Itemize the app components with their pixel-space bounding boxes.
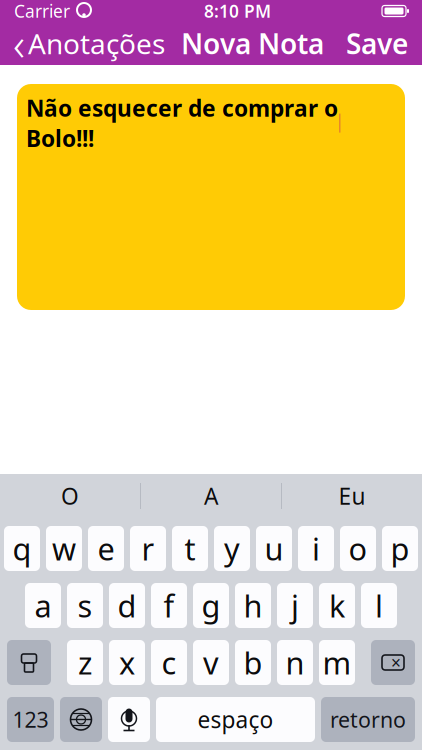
button[interactable]: A: [141, 474, 281, 518]
staticText: ‹: [13, 13, 25, 74]
button[interactable]: n: [277, 640, 313, 685]
button[interactable]: c: [151, 640, 187, 685]
button[interactable]: j: [277, 583, 313, 628]
button[interactable]: v: [193, 640, 229, 685]
button[interactable]: l: [361, 583, 397, 628]
button[interactable]: f: [151, 583, 187, 628]
staticText: Eu: [338, 481, 365, 511]
button[interactable]: b: [235, 640, 271, 685]
staticText: Anotações: [28, 25, 165, 62]
button[interactable]: h: [235, 583, 271, 628]
staticText: retorno: [330, 705, 406, 734]
button[interactable]: z: [67, 640, 103, 685]
button[interactable]: u: [256, 526, 292, 571]
staticText: u: [264, 528, 283, 569]
button[interactable]: Next keyboard: [60, 697, 102, 742]
staticText: d: [117, 585, 136, 626]
staticText: k: [329, 585, 345, 626]
button[interactable]: p: [382, 526, 418, 571]
button[interactable]: x: [109, 640, 145, 685]
staticText: e: [97, 528, 114, 569]
button[interactable]: t: [172, 526, 208, 571]
staticText: l: [375, 585, 383, 626]
staticText: ×: [391, 651, 401, 674]
button[interactable]: q: [4, 526, 40, 571]
button[interactable]: g: [193, 583, 229, 628]
staticText: Não esquecer de comprar o Bolo!!!: [26, 93, 338, 153]
staticText: x: [119, 642, 135, 683]
staticText: q: [12, 528, 31, 569]
button[interactable]: o: [340, 526, 376, 571]
staticText: c: [161, 642, 176, 683]
button[interactable]: y: [214, 526, 250, 571]
staticText: Nova Nota: [181, 25, 324, 62]
button[interactable]: Shift: [7, 640, 51, 685]
button[interactable]: m: [319, 640, 355, 685]
staticText: a: [34, 585, 51, 626]
staticText: 123: [12, 705, 48, 734]
staticText: A: [204, 481, 218, 511]
button[interactable]: w: [46, 526, 82, 571]
staticText: 8:10 PM: [204, 0, 271, 22]
button[interactable]: Save: [332, 22, 422, 64]
staticText: b: [243, 642, 262, 683]
staticText: y: [224, 528, 240, 569]
staticText: espaço: [197, 704, 273, 734]
button[interactable]: ‹: [0, 22, 173, 64]
staticText: t: [184, 528, 195, 569]
staticText: O: [61, 481, 79, 511]
staticText: n: [285, 642, 304, 683]
button[interactable]: i: [298, 526, 334, 571]
staticText: s: [77, 585, 92, 626]
staticText: g: [201, 585, 220, 626]
staticText: h: [243, 585, 262, 626]
button[interactable]: retorno: [321, 697, 415, 742]
staticText: Carrier: [14, 0, 70, 22]
staticText: f: [163, 585, 174, 626]
staticText: i: [312, 528, 320, 569]
button[interactable]: 123: [7, 697, 54, 742]
staticText: r: [141, 528, 154, 569]
button[interactable]: e: [88, 526, 124, 571]
staticText: Save: [346, 25, 408, 62]
button[interactable]: k: [319, 583, 355, 628]
button[interactable]: Dictate: [108, 697, 150, 742]
button[interactable]: d: [109, 583, 145, 628]
button[interactable]: espaço: [156, 697, 315, 742]
staticText: w: [52, 528, 76, 569]
staticText: j: [291, 585, 299, 626]
staticText: z: [78, 642, 92, 683]
staticText: v: [203, 642, 219, 683]
button[interactable]: Delete: [371, 640, 415, 685]
button[interactable]: a: [25, 583, 61, 628]
button[interactable]: s: [67, 583, 103, 628]
staticText: p: [390, 528, 409, 569]
staticText: m: [322, 642, 351, 683]
button[interactable]: r: [130, 526, 166, 571]
staticText: o: [348, 528, 367, 569]
button[interactable]: Eu: [282, 474, 422, 518]
button[interactable]: O: [0, 474, 140, 518]
